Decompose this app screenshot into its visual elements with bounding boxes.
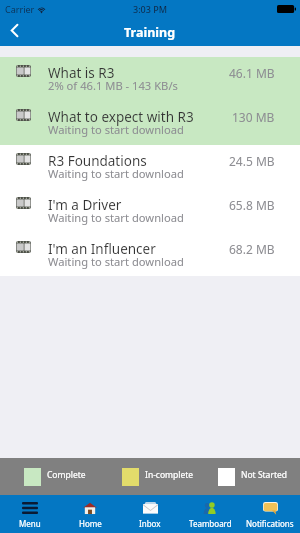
- button[interactable]: Back: [0, 18, 30, 46]
- button[interactable]: What is R3: [0, 57, 300, 101]
- button[interactable]: Inbox: [120, 495, 180, 533]
- staticText: Teamboard: [189, 518, 232, 529]
- staticText: Inbox: [139, 518, 161, 529]
- staticText: I'm an Influencer: [48, 242, 156, 257]
- staticText: Not Started: [241, 469, 287, 481]
- staticText: Home: [79, 518, 102, 529]
- staticText: R3 Foundations: [48, 154, 147, 169]
- button[interactable]: Notifications: [240, 495, 300, 533]
- staticText: Complete: [47, 469, 86, 481]
- staticText: Menu: [19, 518, 41, 529]
- button[interactable]: Teamboard: [180, 495, 240, 533]
- staticText: Notifications: [246, 518, 294, 529]
- button[interactable]: I'm a Driver: [0, 189, 300, 233]
- button[interactable]: Menu: [0, 495, 60, 533]
- staticText: Waiting to start download: [48, 124, 184, 137]
- button[interactable]: What to expect with R3: [0, 101, 300, 145]
- staticText: Waiting to start download: [48, 212, 184, 225]
- staticText: What to expect with R3: [48, 110, 194, 125]
- staticText: 2% of 46.1 MB - 143 KB/s: [48, 80, 178, 93]
- button[interactable]: Not Started: [218, 458, 287, 495]
- staticText: 130 MB: [232, 109, 275, 125]
- staticText: Waiting to start download: [48, 168, 184, 181]
- button[interactable]: In-complete: [122, 458, 194, 495]
- staticText: What is R3: [48, 66, 115, 81]
- staticText: Carrier: [5, 3, 35, 15]
- staticText: Training: [124, 24, 176, 41]
- button[interactable]: Complete: [24, 458, 86, 495]
- staticText: I'm a Driver: [48, 198, 122, 213]
- button[interactable]: Home: [60, 495, 120, 533]
- staticText: In-complete: [145, 469, 194, 481]
- staticText: 65.8 MB: [229, 197, 275, 213]
- staticText: Waiting to start download: [48, 256, 184, 269]
- button[interactable]: R3 Foundations: [0, 145, 300, 189]
- button[interactable]: I'm an Influencer: [0, 233, 300, 276]
- staticText: 3:03 PM: [133, 3, 167, 15]
- staticText: 24.5 MB: [229, 153, 275, 169]
- staticText: 46.1 MB: [229, 65, 275, 81]
- staticText: 68.2 MB: [229, 241, 275, 257]
